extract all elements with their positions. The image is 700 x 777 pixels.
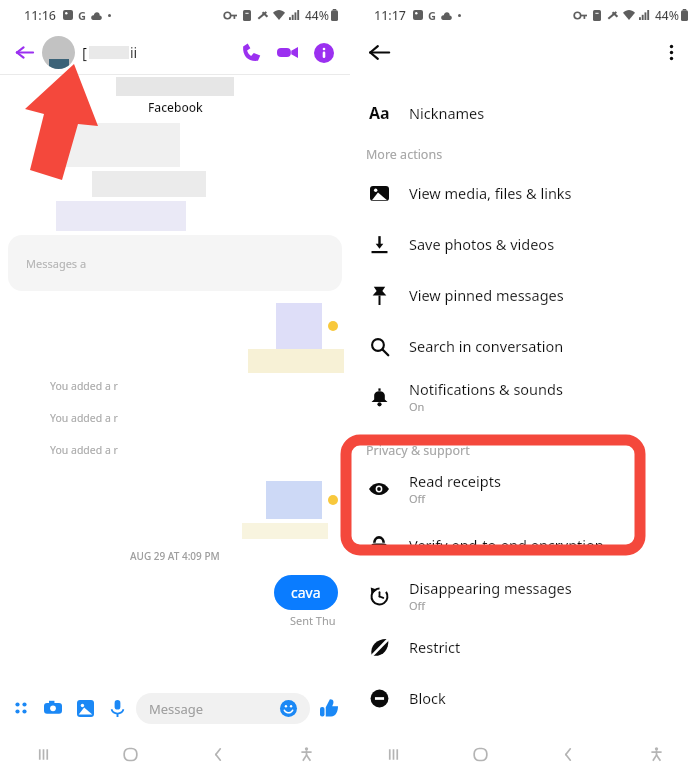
staticText: Disappearing messages [409,578,572,598]
staticText: Sent Thu [290,613,336,628]
staticText: More actions [366,146,443,163]
button[interactable]: Search in conversation [350,320,700,371]
button[interactable]: View media, files & links [350,167,700,218]
button[interactable]: Disappearing messages [350,570,700,621]
staticText: Notifications & sounds [409,379,563,399]
button[interactable]: cava [274,575,338,610]
button[interactable]: Send like [316,695,342,721]
staticText: View pinned messages [409,285,564,305]
staticText: Restrict [409,637,461,657]
button[interactable]: Restrict [350,621,700,672]
staticText: Messages a [26,256,87,271]
button[interactable]: More apps [8,695,34,721]
button[interactable]: Message [136,693,310,724]
staticText: Search in conversation [409,336,564,356]
staticText: Block [409,688,446,708]
button[interactable]: Voice call [235,36,268,69]
staticText: View media, files & links [409,183,572,203]
button[interactable]: Conversation info [307,36,340,69]
button[interactable]: Aa [350,87,700,138]
button[interactable]: Camera [40,695,66,721]
staticText: Aa [369,102,390,124]
staticText: Read receipts [409,471,501,491]
staticText: Off [409,491,426,506]
staticText: Verify end-to-end encryption [409,535,604,555]
staticText: G [78,8,86,23]
staticText: Message [149,700,204,718]
staticText: G [428,8,436,23]
staticText: You added a r [50,411,118,425]
staticText: AUG 29 AT 4:09 PM [130,549,220,563]
staticText: ii [130,43,138,62]
staticText: [ [82,42,87,62]
staticText: You added a r [50,379,118,393]
button[interactable]: Back [362,35,396,69]
staticText: Nicknames [409,103,485,123]
staticText: Off [409,598,426,613]
staticText: 44% [655,7,679,23]
staticText: On [409,399,425,414]
button[interactable]: View pinned messages [350,269,700,320]
button[interactable]: Video call [271,36,304,69]
button[interactable]: Notifications & sounds [350,371,700,422]
staticText: 11:16 [24,7,57,24]
button[interactable]: Block [350,672,700,723]
staticText: Privacy & support [366,442,470,459]
staticText: Facebook [148,99,203,115]
button[interactable]: Verify end-to-end encryption [350,519,700,570]
button[interactable]: More options [654,35,688,69]
button[interactable]: Voice message [104,695,130,721]
staticText: 44% [305,7,329,23]
button[interactable]: Gallery [72,695,98,721]
staticText: You added a r [50,443,118,457]
staticText: cava [291,583,321,602]
button[interactable]: Save photos & videos [350,218,700,269]
button[interactable]: Read receipts [350,463,700,514]
button[interactable]: Profile [42,36,75,69]
staticText: Save photos & videos [409,234,555,254]
staticText: 11:17 [374,7,407,24]
button[interactable]: Back [8,36,40,68]
